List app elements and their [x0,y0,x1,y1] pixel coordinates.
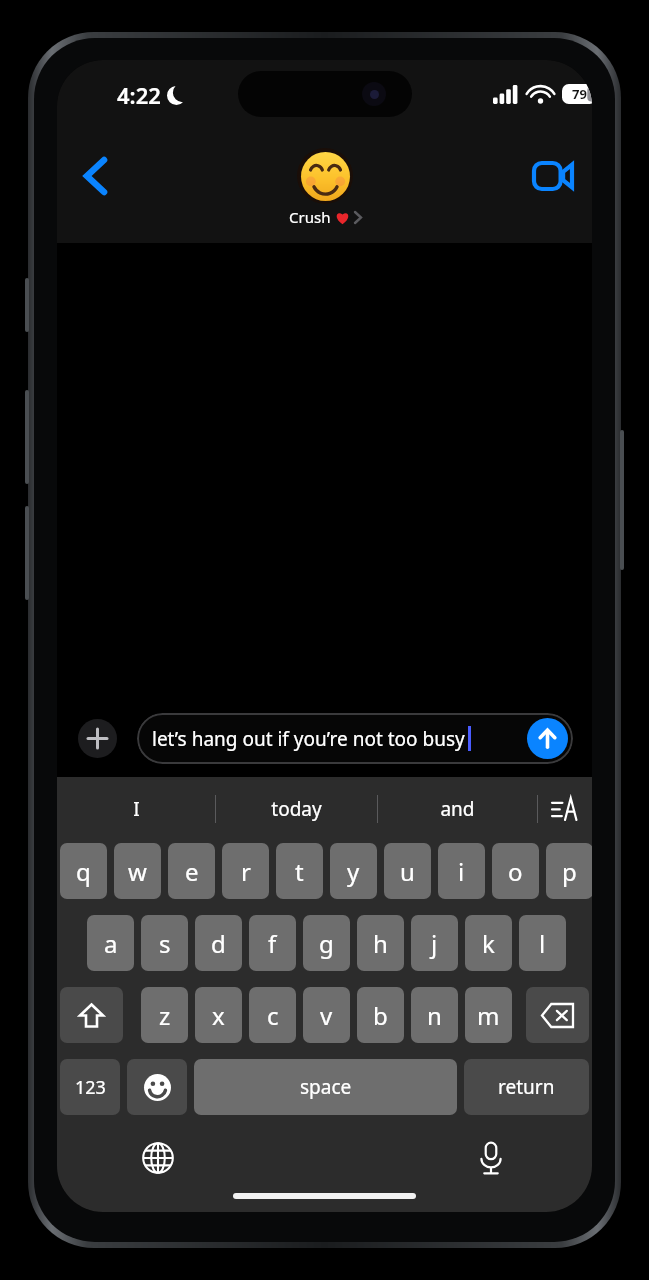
staticText: u [400,855,415,888]
button[interactable]: i [438,843,485,899]
staticText: y [347,855,360,888]
button[interactable]: Video call [525,148,581,204]
button[interactable]: q [60,843,107,899]
button[interactable]: g [303,915,350,971]
staticText: s [159,927,171,960]
button[interactable]: I [57,777,215,840]
button[interactable]: t [276,843,323,899]
button[interactable]: p [546,843,592,899]
staticText: x [212,999,225,1032]
button[interactable]: b [357,987,404,1043]
staticText: v [320,999,333,1032]
staticText: l [539,927,546,960]
staticText: space [300,1074,352,1100]
staticText: c [267,999,279,1032]
button[interactable]: s [141,915,188,971]
staticText: p [562,855,577,888]
button[interactable]: r [222,843,269,899]
button[interactable]: x [195,987,242,1043]
staticText: I [133,796,140,822]
staticText: and [440,796,475,822]
button[interactable]: v [303,987,350,1043]
staticText: d [211,927,226,960]
button[interactable]: Emoji [127,1059,187,1115]
button[interactable]: d [195,915,242,971]
button[interactable]: Crush [57,148,592,227]
button[interactable]: Shift [60,987,123,1043]
staticText: z [159,999,171,1032]
button[interactable]: Switch keyboard [135,1135,181,1181]
staticText: t [295,855,304,888]
staticText: a [104,927,118,960]
staticText: return [498,1074,555,1100]
button[interactable]: z [141,987,188,1043]
staticText: w [128,855,147,888]
button[interactable]: l [519,915,566,971]
button[interactable]: e [168,843,215,899]
button[interactable]: let’s hang out if you’re not too busy [137,713,573,764]
staticText: j [431,927,438,960]
button[interactable]: m [465,987,512,1043]
staticText: let’s hang out if you’re not too busy [152,726,465,752]
button[interactable]: space [194,1059,457,1115]
button[interactable]: k [465,915,512,971]
button[interactable]: return [464,1059,589,1115]
button[interactable]: Back [67,148,123,204]
staticText: m [477,999,500,1032]
staticText: f [268,927,277,960]
button[interactable]: o [492,843,539,899]
button[interactable]: 123 [60,1059,120,1115]
button[interactable]: a [87,915,134,971]
staticText: i [458,855,465,888]
button[interactable]: today [215,777,377,840]
staticText: today [271,796,322,822]
staticText: g [319,927,334,960]
button[interactable]: Add attachment [78,719,117,758]
button[interactable]: y [330,843,377,899]
staticText: r [241,855,251,888]
staticText: o [508,855,523,888]
button[interactable]: Dictation [468,1135,514,1181]
staticText: 123 [75,1075,106,1100]
staticText: k [482,927,495,960]
staticText: h [373,927,388,960]
staticText: 4:22 [117,80,161,110]
button[interactable]: j [411,915,458,971]
staticText: e [185,855,199,888]
button[interactable]: Send [527,718,568,759]
button[interactable]: u [384,843,431,899]
button[interactable]: Text formatting [537,777,592,840]
button[interactable]: w [114,843,161,899]
staticText: b [373,999,388,1032]
staticText: 79 [572,85,587,103]
button[interactable]: c [249,987,296,1043]
staticText: n [427,999,442,1032]
button[interactable]: n [411,987,458,1043]
button[interactable]: f [249,915,296,971]
staticText: Crush [289,207,335,227]
button[interactable]: and [377,777,537,840]
button[interactable]: Backspace [526,987,589,1043]
staticText: q [76,855,91,888]
button[interactable]: h [357,915,404,971]
